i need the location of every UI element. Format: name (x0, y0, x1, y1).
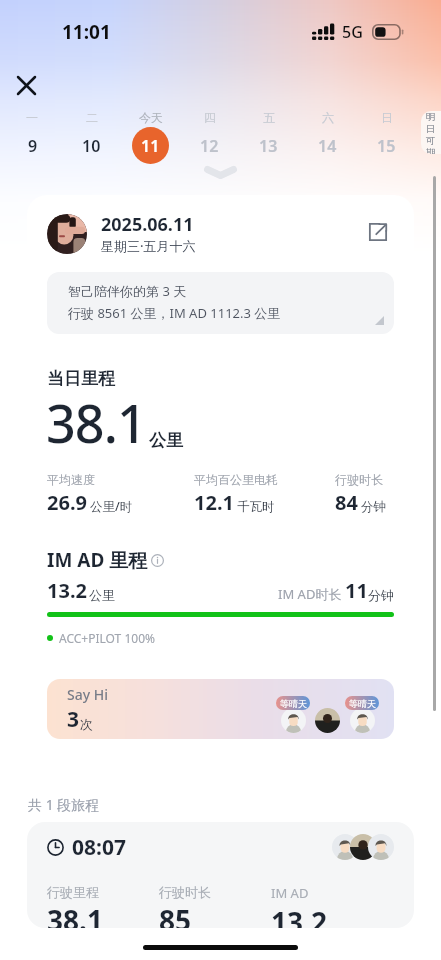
staticText: 行驶时长 (159, 884, 211, 900)
button[interactable]: 一 (2, 108, 62, 164)
staticText: 平均速度 (47, 472, 95, 487)
staticText: 13.2 (47, 577, 87, 604)
staticText: 分钟 (361, 499, 386, 515)
staticText: 五 (263, 110, 275, 125)
staticText: 星期三·五月十六 (101, 237, 196, 255)
button[interactable]: 五 (239, 108, 298, 164)
staticText: 四 (204, 110, 216, 125)
staticText: 14 (318, 135, 337, 157)
staticText: 5G (342, 21, 363, 43)
button[interactable]: 日 (357, 108, 416, 164)
staticText: 13.2 (271, 903, 327, 928)
staticText: 12.1 (194, 489, 234, 516)
staticText: 期 (426, 147, 436, 154)
staticText: 85 (159, 901, 192, 928)
staticText: 平均百公里电耗 (194, 472, 278, 487)
staticText: 38.1 (46, 387, 146, 458)
staticText: 11 (345, 577, 368, 604)
button[interactable]: 智己陪伴你的第 3 天 (47, 272, 394, 334)
staticText: IM AD 里程 (47, 547, 148, 573)
staticText: 明 (426, 111, 436, 123)
staticText: 行驶时长 (335, 472, 383, 487)
staticText: 当日里程 (47, 368, 115, 389)
button[interactable]: 明 (421, 111, 441, 154)
button[interactable]: Say Hi (47, 679, 394, 739)
staticText: 11:01 (62, 19, 111, 45)
button[interactable]: 今天 (121, 108, 180, 164)
button[interactable]: 08:07 (27, 822, 414, 928)
staticText: 2025.06.11 (101, 212, 194, 237)
staticText: 12 (200, 135, 219, 157)
staticText: 共 1 段旅程 (28, 795, 100, 814)
staticText: ACC+PILOT 100% (59, 630, 155, 646)
staticText: 公里 (149, 430, 183, 451)
staticText: 15 (377, 135, 396, 157)
staticText: 日 (426, 123, 436, 135)
staticText: 次 (80, 716, 93, 732)
staticText: 等晴天 (349, 698, 376, 709)
button[interactable]: Close (3, 62, 49, 108)
staticText: 六 (322, 110, 334, 125)
staticText: 38.1 (47, 901, 103, 928)
staticText: 日 (381, 110, 393, 125)
button[interactable]: Share (362, 216, 394, 248)
staticText: 公里 (89, 587, 115, 603)
button[interactable]: 四 (180, 108, 239, 164)
staticText: 公里/时 (90, 498, 133, 515)
staticText: 10 (82, 135, 101, 157)
staticText: 分钟 (368, 587, 394, 603)
staticText: 13 (259, 135, 278, 157)
staticText: 智己陪伴你的第 3 天 (68, 282, 187, 300)
staticText: IM AD时长 (278, 585, 345, 603)
button[interactable]: 二 (62, 108, 121, 164)
staticText: 千瓦时 (237, 499, 275, 515)
staticText: 一 (26, 110, 38, 125)
staticText: 可 (426, 135, 436, 147)
staticText: 行驶 8561 公里，IM AD 1112.3 公里 (68, 304, 281, 322)
staticText: 今天 (139, 110, 163, 125)
staticText: 行驶里程 (47, 884, 99, 900)
staticText: IM AD (271, 884, 309, 902)
staticText: 84 (335, 489, 358, 516)
staticText: 等晴天 (280, 698, 307, 709)
staticText: 9 (28, 135, 38, 157)
staticText: 11 (141, 135, 160, 157)
staticText: 3 (67, 705, 80, 734)
button[interactable]: 六 (298, 108, 357, 164)
staticText: 08:07 (72, 833, 126, 862)
staticText: 二 (86, 110, 98, 125)
staticText: Say Hi (67, 685, 108, 704)
staticText: 26.9 (47, 489, 87, 516)
